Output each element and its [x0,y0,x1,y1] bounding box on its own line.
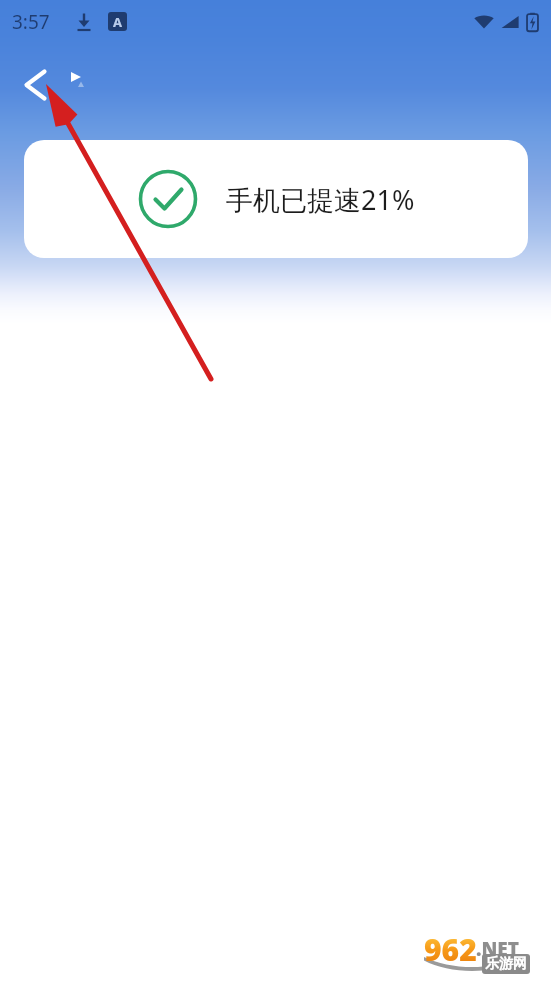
staticText: 3:57 [12,9,50,35]
staticText: A [113,13,122,31]
button[interactable]: Back [8,58,62,112]
staticText: 962 [424,929,477,970]
staticText: .NET [476,936,519,962]
staticText: 乐游网 [485,955,527,973]
button[interactable]: 手机已提速21% [24,140,528,258]
staticText: 手机已提速21% [226,181,415,218]
